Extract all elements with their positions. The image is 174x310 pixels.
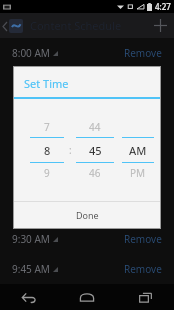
staticText: PM — [130, 166, 146, 180]
button[interactable]: 9:30 AM — [0, 224, 174, 254]
button[interactable]: Add — [146, 13, 174, 38]
button[interactable]: 9:45 AM — [0, 254, 174, 284]
button[interactable]: Done — [14, 202, 160, 228]
staticText: 9 — [44, 166, 50, 180]
staticText: Remove — [124, 262, 162, 276]
staticText: 9:45 AM — [12, 262, 50, 276]
staticText: AM — [129, 143, 147, 158]
staticText: Content Schedule — [30, 18, 122, 33]
staticText: 8:00 AM — [12, 46, 50, 60]
button[interactable]: Recent apps — [116, 284, 174, 310]
staticText: Set Time — [24, 76, 69, 91]
button[interactable]: AM — [122, 117, 154, 183]
staticText: 4:27 — [155, 1, 171, 12]
staticText: 8 — [44, 143, 51, 158]
staticText: Remove — [124, 46, 162, 60]
staticText: Remove — [124, 232, 162, 246]
staticText: 46 — [89, 166, 101, 180]
staticText: : — [69, 143, 72, 157]
button[interactable]: 44 — [76, 117, 114, 183]
staticText: Done — [76, 209, 99, 221]
button[interactable]: Back — [0, 13, 26, 38]
staticText: 44 — [89, 120, 101, 134]
staticText: 7 — [44, 120, 50, 134]
button[interactable]: 8:00 AM — [0, 38, 174, 68]
button[interactable]: 7 — [30, 117, 64, 183]
staticText: 45 — [89, 143, 102, 158]
button[interactable]: Back — [0, 284, 58, 310]
button[interactable]: Home — [58, 284, 116, 310]
staticText: 9:30 AM — [12, 232, 50, 246]
